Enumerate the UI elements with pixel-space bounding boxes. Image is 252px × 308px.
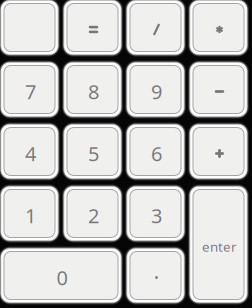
button[interactable]: equals	[64, 1, 120, 54]
button[interactable]: multiply	[190, 1, 246, 54]
button[interactable]: divide	[127, 1, 183, 54]
staticText: 5	[88, 140, 99, 167]
button[interactable]: 9	[127, 63, 183, 116]
button[interactable]: decimal point	[127, 249, 183, 302]
staticText: 4	[25, 140, 36, 167]
staticText: 3	[151, 202, 162, 229]
button[interactable]: enter	[190, 187, 246, 302]
button[interactable]: 7	[1, 63, 57, 116]
button[interactable]: 1	[1, 187, 57, 240]
button[interactable]: 8	[64, 63, 120, 116]
button[interactable]: 6	[127, 125, 183, 178]
button[interactable]: 5	[64, 125, 120, 178]
staticText: 9	[151, 78, 162, 105]
staticText: 7	[25, 78, 36, 105]
staticText: 6	[151, 140, 162, 167]
staticText: 1	[25, 202, 36, 229]
button[interactable]: 4	[1, 125, 57, 178]
button[interactable]: 3	[127, 187, 183, 240]
button[interactable]: 2	[64, 187, 120, 240]
staticText: enter	[202, 238, 237, 255]
button[interactable]: minus	[190, 63, 246, 116]
staticText: 0	[56, 264, 67, 291]
button[interactable]: clear	[1, 1, 57, 54]
staticText: 2	[88, 202, 99, 229]
button[interactable]: plus	[190, 125, 246, 178]
staticText: 8	[88, 78, 99, 105]
button[interactable]: 0	[1, 249, 120, 302]
